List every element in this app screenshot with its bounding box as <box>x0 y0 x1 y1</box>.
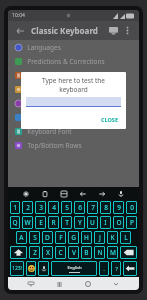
button[interactable]: P <box>126 216 137 229</box>
button[interactable]: 8 <box>100 201 111 214</box>
button[interactable]: V <box>68 246 79 259</box>
staticText: 5 <box>65 203 69 212</box>
button[interactable]: H <box>81 231 92 244</box>
staticText: 6 <box>78 203 82 212</box>
staticText: Keyboard Font <box>27 127 72 136</box>
button[interactable]: Y <box>74 216 85 229</box>
staticText: M <box>110 248 116 257</box>
button[interactable]: O <box>113 216 124 229</box>
button[interactable]: 6 <box>74 201 85 214</box>
button[interactable]: 3 <box>35 201 46 214</box>
button[interactable]: ? <box>111 261 121 276</box>
button[interactable]: Top/Bottom Rows <box>8 138 139 152</box>
button[interactable]: U <box>87 216 98 229</box>
button[interactable]: Z <box>29 246 40 259</box>
button[interactable]: F <box>55 231 66 244</box>
button[interactable]: Swipe Typing <box>8 96 139 110</box>
staticText: 7 <box>91 203 95 212</box>
button[interactable]: Layout <box>58 188 70 200</box>
button[interactable]: T <box>61 216 72 229</box>
button[interactable]: 1 <box>10 201 20 214</box>
button[interactable]: Languages <box>8 40 139 54</box>
button[interactable]: I <box>100 216 111 229</box>
staticText: Predictions & Corrections <box>27 57 105 66</box>
button[interactable]: Key Long-press <box>8 82 139 96</box>
button[interactable]: N <box>94 246 105 259</box>
button[interactable]: A <box>16 231 27 244</box>
button[interactable]: Home <box>82 278 94 290</box>
staticText: J <box>99 233 101 242</box>
button[interactable]: Move left <box>77 188 89 200</box>
staticText: 123! <box>12 265 22 272</box>
staticText: V <box>72 248 76 257</box>
button[interactable]: CLOSE <box>93 114 126 125</box>
button[interactable]: Hide keyboard <box>25 278 37 290</box>
staticText: X <box>46 248 50 257</box>
button[interactable]: Emoji <box>26 261 36 276</box>
button[interactable]: D <box>42 231 53 244</box>
button[interactable]: Q <box>10 216 20 229</box>
staticText: L <box>124 233 128 242</box>
button[interactable]: 4 <box>48 201 59 214</box>
button[interactable]: M <box>107 246 118 259</box>
staticText: G <box>71 233 76 242</box>
button[interactable]: . <box>99 261 109 276</box>
button[interactable]: 7 <box>87 201 98 214</box>
staticText: I <box>104 218 107 227</box>
button[interactable]: More options <box>121 24 134 37</box>
button[interactable]: Voice input <box>115 188 127 200</box>
button[interactable]: Voice & Sounds <box>8 68 139 82</box>
staticText: Swipe Typing <box>27 99 68 108</box>
button[interactable]: S <box>29 231 40 244</box>
button[interactable]: Back <box>110 278 122 290</box>
staticText: S <box>33 233 37 242</box>
button[interactable]: Clipboard <box>39 188 51 200</box>
button[interactable]: Back <box>13 24 27 38</box>
staticText: ? <box>115 265 118 273</box>
button[interactable]: G <box>68 231 79 244</box>
button[interactable]: E <box>35 216 46 229</box>
button[interactable]: English <box>51 261 97 276</box>
staticText: Z <box>33 248 37 257</box>
button[interactable]: 2 <box>22 201 33 214</box>
staticText: Classic Keyboard <box>31 25 98 36</box>
button[interactable]: R <box>48 216 59 229</box>
button[interactable]: 9 <box>113 201 124 214</box>
staticText: W <box>24 218 31 227</box>
button[interactable]: J <box>94 231 105 244</box>
button[interactable]: X <box>42 246 53 259</box>
button[interactable]: Preview <box>106 23 121 38</box>
staticText: U <box>90 218 95 227</box>
button[interactable]: Key Size <box>8 110 139 124</box>
staticText: R <box>51 218 56 227</box>
staticText: 8 <box>104 203 108 212</box>
staticText: Top/Bottom Rows <box>27 141 82 150</box>
button[interactable]: B <box>81 246 92 259</box>
staticText: Q <box>12 218 18 227</box>
button[interactable]: Keyboard Font <box>8 124 139 138</box>
button[interactable]: W <box>22 216 33 229</box>
button[interactable]: L <box>120 231 131 244</box>
button[interactable]: 123! <box>10 261 24 276</box>
staticText: E <box>39 218 43 227</box>
button[interactable]: K <box>107 231 118 244</box>
button[interactable]: Predictions & Corrections <box>8 54 139 68</box>
staticText: English <box>67 265 82 271</box>
button[interactable]: Recents <box>53 278 65 290</box>
staticText: . <box>103 265 105 273</box>
staticText: Languages <box>27 43 61 52</box>
button[interactable]: C <box>55 246 66 259</box>
button[interactable]: Shift <box>10 246 27 259</box>
staticText: Type here to test the keyboard <box>28 76 119 94</box>
button[interactable]: Enter <box>123 261 137 276</box>
staticText: K <box>110 233 115 242</box>
button[interactable]: 0 <box>126 201 137 214</box>
button[interactable]: 5 <box>61 201 72 214</box>
button[interactable]: Move right <box>96 188 108 200</box>
button[interactable]: Backspace <box>120 246 137 259</box>
button[interactable]: Voice input <box>38 261 49 276</box>
button[interactable]: Settings <box>20 188 32 200</box>
staticText: C <box>58 248 63 257</box>
staticText: O <box>116 218 122 227</box>
